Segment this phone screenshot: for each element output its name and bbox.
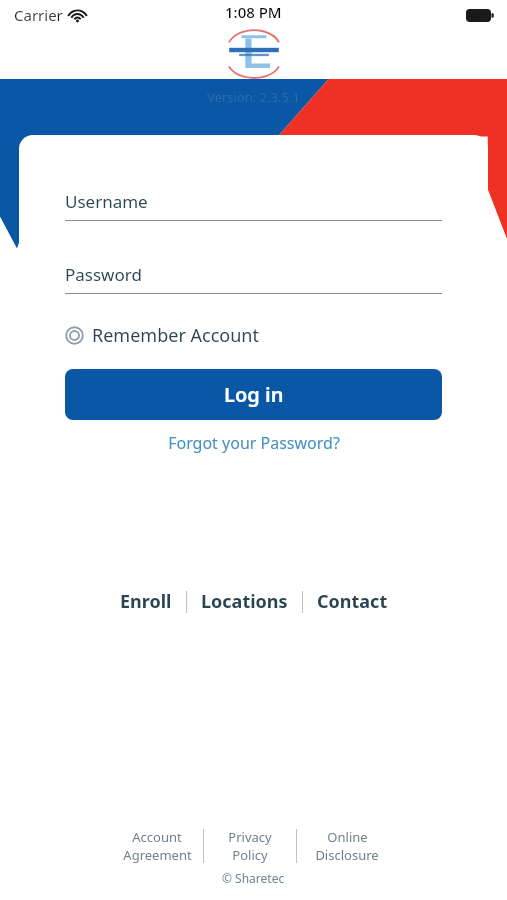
button[interactable]: Contact [303,583,402,620]
staticText: Disclosure [315,846,379,864]
staticText: Username [65,190,148,213]
staticText: Log in [224,381,284,408]
button[interactable]: Forgot your Password? [65,432,442,454]
staticText: Account [132,828,182,846]
button[interactable]: Username [65,182,442,220]
button[interactable]: Online [297,826,397,866]
button[interactable]: Log in [65,369,442,420]
staticText: Version: 2.3.5.1 [0,88,507,106]
staticText: Carrier [14,5,63,25]
other: Landmark Credit Union logo [223,27,285,79]
staticText: Online [327,828,368,846]
staticText: Locations [201,589,288,614]
button[interactable]: Locations [187,583,302,620]
button[interactable]: Enroll [106,583,186,620]
button[interactable]: Privacy [204,826,296,866]
staticText: Password [65,263,142,286]
button[interactable]: Remember Account [65,319,259,352]
staticText: Enroll [120,589,172,614]
staticText: © Sharetec [222,870,285,886]
staticText: Agreement [123,846,192,864]
staticText: Contact [317,589,388,614]
staticText: Policy [232,846,268,864]
staticText: 1:08 PM [225,2,282,22]
staticText: Privacy [228,828,272,846]
staticText: Forgot your Password? [168,432,340,454]
button[interactable]: Account [111,826,203,866]
button[interactable]: Password [65,255,442,293]
staticText: Remember Account [92,323,259,348]
